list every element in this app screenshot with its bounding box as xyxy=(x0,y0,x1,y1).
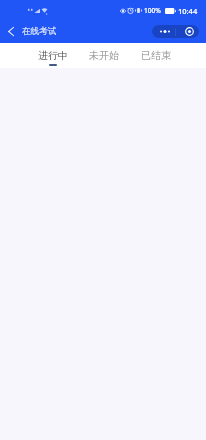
staticText: 已结束 xyxy=(141,49,171,62)
button[interactable]: More options xyxy=(152,25,175,38)
button[interactable]: Close xyxy=(176,25,199,38)
button[interactable]: 未开始 xyxy=(78,43,130,68)
button[interactable]: 已结束 xyxy=(130,43,182,68)
staticText: 进行中 xyxy=(38,49,68,62)
staticText: 在线考试 xyxy=(22,26,57,37)
button[interactable]: Back xyxy=(0,21,22,41)
staticText: 10:44 xyxy=(178,6,198,16)
button[interactable]: 进行中 xyxy=(27,43,78,68)
staticText: 100% xyxy=(144,6,161,15)
staticText: 未开始 xyxy=(89,49,119,62)
